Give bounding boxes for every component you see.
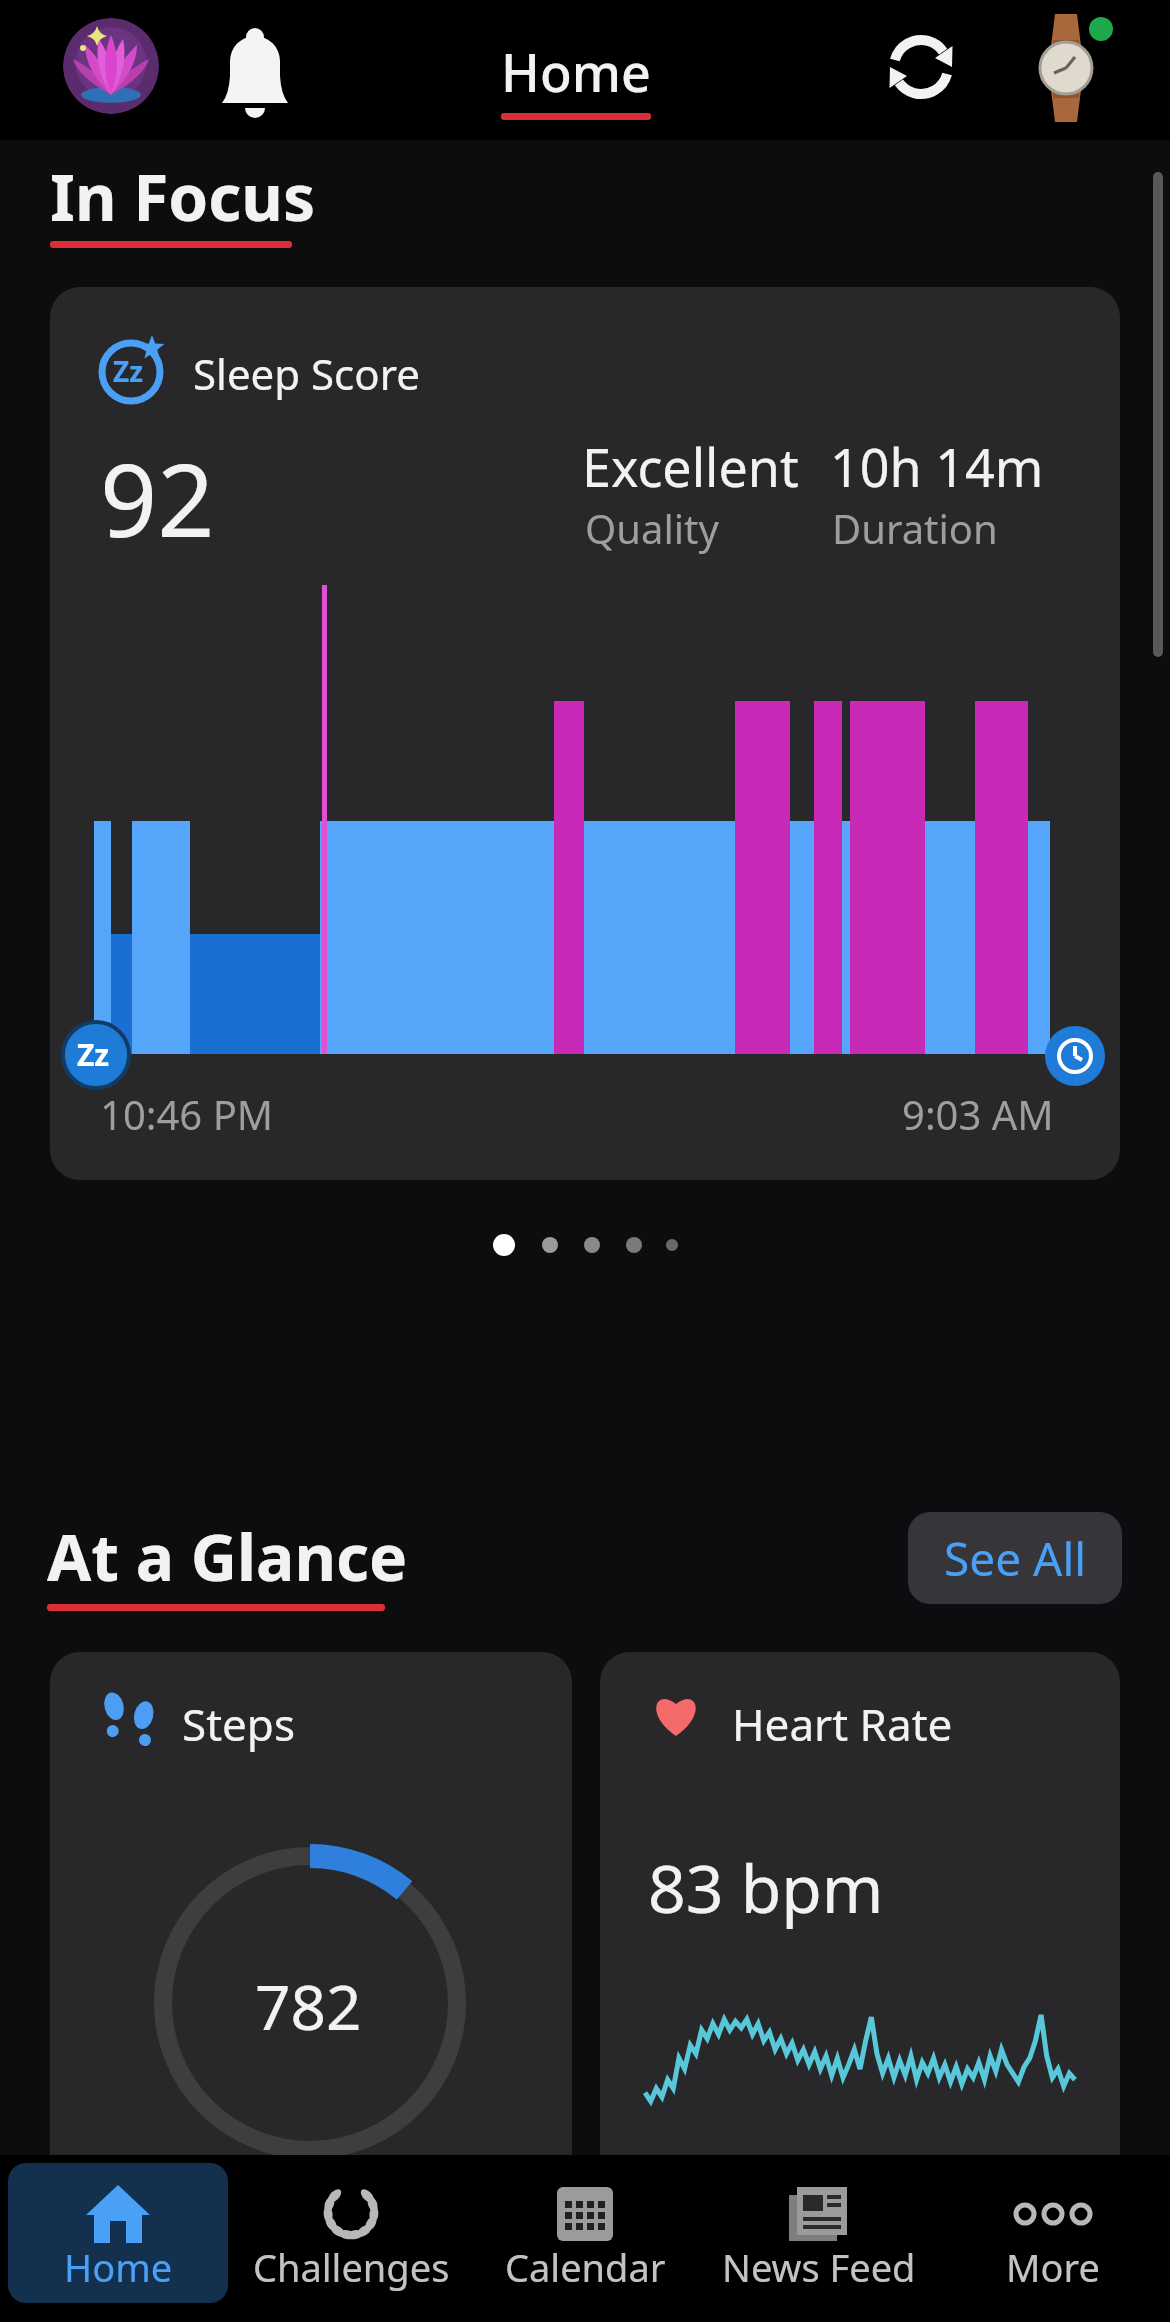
staticText: 92 <box>100 430 215 566</box>
button[interactable]: Challenges <box>234 2163 468 2303</box>
button[interactable]: Steps <box>50 1652 572 2192</box>
button[interactable]: Calendar <box>468 2163 702 2303</box>
staticText: Zz <box>77 1034 110 1075</box>
button[interactable]: More <box>936 2163 1170 2303</box>
staticText: Steps <box>182 1694 295 1754</box>
staticText: 10h 14m <box>830 431 1044 502</box>
staticText: News Feed <box>722 2241 916 2293</box>
staticText: More <box>1006 2241 1100 2293</box>
staticText: Sleep Score <box>193 345 420 402</box>
staticText: 9:03 AM <box>902 1087 1054 1141</box>
staticText: Home <box>64 2241 173 2293</box>
staticText: Duration <box>832 501 998 555</box>
staticText: Quality <box>585 501 719 555</box>
staticText: Zz <box>113 352 144 390</box>
button[interactable]: See All <box>908 1512 1122 1604</box>
button[interactable]: Heart Rate <box>600 1652 1120 2192</box>
staticText: In Focus <box>50 153 316 240</box>
button[interactable] <box>884 30 958 104</box>
staticText: Heart Rate <box>732 1694 953 1754</box>
button[interactable]: Home <box>8 2163 228 2303</box>
staticText: Calendar <box>505 2241 666 2293</box>
staticText: Excellent <box>582 431 799 502</box>
staticText: 83 bpm <box>648 1842 884 1932</box>
staticText: 10:46 PM <box>100 1087 274 1141</box>
staticText: See All <box>944 1527 1087 1590</box>
staticText: At a Glance <box>47 1513 408 1600</box>
staticText: 782 <box>255 1964 362 2048</box>
staticText: Challenges <box>253 2241 450 2293</box>
button[interactable] <box>220 26 290 110</box>
button[interactable]: News Feed <box>702 2163 936 2303</box>
button[interactable] <box>63 18 159 114</box>
staticText: Home <box>501 36 651 107</box>
button[interactable] <box>1024 10 1114 126</box>
button[interactable]: Zz <box>50 287 1120 1180</box>
